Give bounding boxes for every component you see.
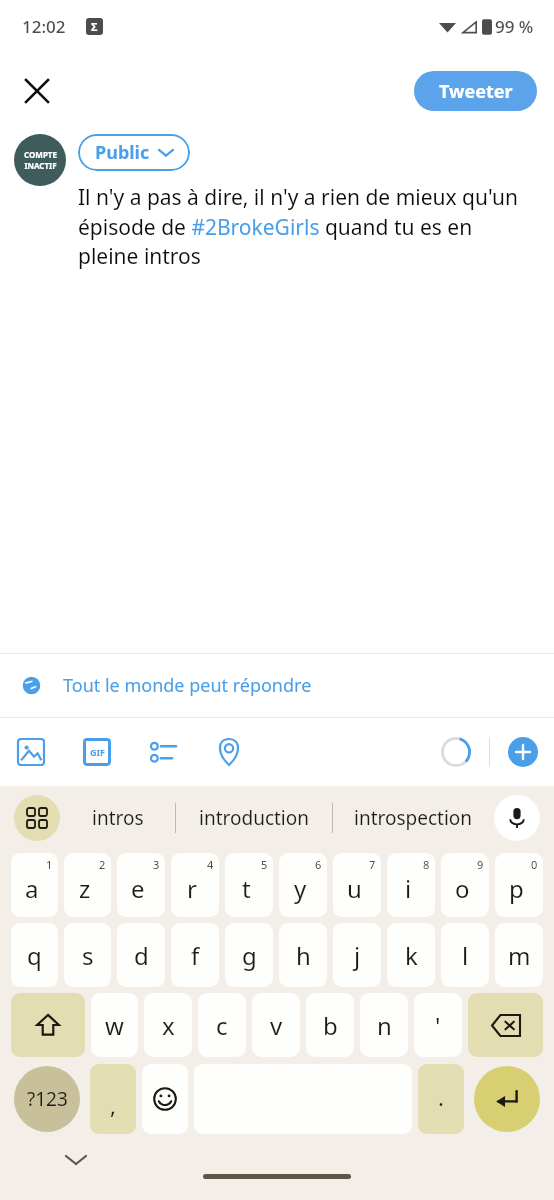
staticText: 5: [261, 857, 268, 872]
staticText: l: [462, 939, 469, 972]
button[interactable]: Emoji: [142, 1064, 188, 1134]
staticText: d: [134, 939, 149, 972]
staticText: introspection: [354, 805, 473, 831]
button[interactable]: e: [117, 853, 165, 917]
staticText: ,: [110, 1090, 116, 1120]
staticText: f: [191, 939, 200, 972]
button[interactable]: Média: [16, 737, 46, 767]
button[interactable]: k: [387, 923, 435, 987]
staticText: INACTIF: [24, 160, 57, 171]
staticText: m: [508, 939, 531, 972]
staticText: x: [162, 1009, 175, 1042]
staticText: 6: [315, 857, 322, 872]
button[interactable]: y: [279, 853, 327, 917]
staticText: e: [131, 872, 145, 905]
staticText: q: [27, 939, 42, 972]
staticText: s: [82, 939, 94, 972]
staticText: c: [216, 1009, 228, 1042]
button[interactable]: intros: [60, 786, 175, 850]
button[interactable]: ?123: [14, 1066, 80, 1132]
staticText: GIF: [90, 746, 105, 758]
staticText: b: [323, 1009, 338, 1042]
button[interactable]: ,: [90, 1064, 136, 1134]
staticText: 12:02: [22, 15, 66, 38]
button[interactable]: b: [306, 993, 354, 1057]
staticText: .: [438, 1082, 444, 1112]
staticText: ': [435, 1009, 441, 1042]
staticText: 1: [46, 857, 53, 872]
staticText: 8: [423, 857, 430, 872]
staticText: 3: [153, 857, 160, 872]
button[interactable]: q: [11, 923, 58, 987]
button[interactable]: o: [441, 853, 489, 917]
staticText: w: [105, 1009, 124, 1042]
button[interactable]: i: [387, 853, 435, 917]
button[interactable]: l: [441, 923, 489, 987]
staticText: Public: [95, 140, 150, 165]
button[interactable]: x: [144, 993, 192, 1057]
button[interactable]: r: [171, 853, 219, 917]
staticText: Tweeter: [439, 79, 513, 104]
button[interactable]: Profil: [14, 134, 66, 186]
staticText: a: [25, 872, 39, 905]
button[interactable]: Ajouter: [508, 737, 538, 767]
staticText: 4: [207, 857, 214, 872]
button[interactable]: .: [418, 1064, 464, 1134]
button[interactable]: GIF: [82, 737, 112, 767]
staticText: 0: [531, 857, 538, 872]
staticText: introduction: [199, 805, 310, 831]
button[interactable]: p: [495, 853, 543, 917]
button[interactable]: Saisie vocale: [494, 795, 540, 841]
staticText: j: [354, 939, 361, 972]
button[interactable]: n: [360, 993, 408, 1057]
staticText: h: [296, 939, 311, 972]
staticText: 7: [369, 857, 376, 872]
staticText: 2: [99, 857, 106, 872]
staticText: r: [187, 872, 197, 905]
button[interactable]: introduction: [176, 786, 332, 850]
button[interactable]: s: [64, 923, 111, 987]
button[interactable]: j: [333, 923, 381, 987]
button[interactable]: f: [171, 923, 219, 987]
button[interactable]: Maj: [11, 993, 85, 1057]
other: Masquer le clavier: [66, 1150, 86, 1170]
staticText: v: [270, 1009, 283, 1042]
button[interactable]: w: [91, 993, 138, 1057]
button[interactable]: Lieu: [214, 737, 244, 767]
staticText: intros: [92, 805, 144, 831]
button[interactable]: introspection: [333, 786, 494, 850]
button[interactable]: c: [198, 993, 246, 1057]
staticText: z: [79, 872, 91, 905]
button[interactable]: m: [495, 923, 543, 987]
button[interactable]: Supprimer: [468, 993, 543, 1057]
staticText: p: [509, 872, 524, 905]
button[interactable]: Entrée: [474, 1066, 540, 1132]
button[interactable]: Tweeter: [414, 71, 537, 111]
button[interactable]: t: [225, 853, 273, 917]
button[interactable]: a: [11, 853, 58, 917]
staticText: n: [377, 1009, 392, 1042]
staticText: Tout le monde peut répondre: [63, 673, 312, 698]
staticText: y: [294, 872, 307, 905]
button[interactable]: Sondage: [148, 737, 178, 767]
staticText: 9: [477, 857, 484, 872]
button[interactable]: Tout le monde peut répondre: [0, 654, 554, 717]
staticText: Il n'y a pas à dire, il n'y a rien de mi…: [78, 183, 536, 270]
button[interactable]: Fermer: [14, 68, 60, 114]
button[interactable]: v: [252, 993, 300, 1057]
staticText: ?123: [27, 1086, 68, 1112]
button[interactable]: ': [414, 993, 462, 1057]
button[interactable]: g: [225, 923, 273, 987]
staticText: COMPTE: [24, 149, 57, 160]
button[interactable]: u: [333, 853, 381, 917]
button[interactable]: z: [64, 853, 111, 917]
button[interactable]: d: [117, 923, 165, 987]
staticText: o: [455, 872, 470, 905]
button[interactable]: h: [279, 923, 327, 987]
button[interactable]: Plus d'options: [14, 795, 60, 841]
staticText: i: [405, 872, 412, 905]
staticText: t: [242, 872, 251, 905]
button[interactable]: Public: [78, 134, 190, 171]
staticText: Σ: [91, 19, 98, 34]
